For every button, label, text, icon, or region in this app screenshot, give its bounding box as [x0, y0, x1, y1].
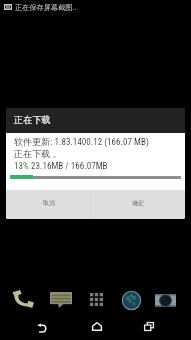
- button[interactable]: Phone: [8, 285, 38, 313]
- staticText: 正在下载: [14, 114, 51, 126]
- button[interactable]: Back: [32, 314, 52, 340]
- staticText: 取消: [43, 199, 55, 206]
- button[interactable]: Camera: [150, 286, 180, 314]
- staticText: 正在下载 。: [14, 148, 62, 159]
- button[interactable]: Home: [87, 313, 107, 340]
- staticText: 正在保存屏幕截图..: [15, 3, 77, 12]
- button[interactable]: Recents: [139, 313, 159, 340]
- button[interactable]: Browser: [116, 286, 146, 314]
- staticText: 13%: [14, 161, 29, 172]
- button[interactable]: 取消: [6, 190, 91, 219]
- button[interactable]: Apps: [81, 285, 111, 313]
- staticText: 确定: [132, 199, 144, 206]
- staticText: 软件更新: 1.83.1400.12 (166.07 MB): [14, 136, 149, 147]
- staticText: 23.16MB / 166.07MB: [29, 161, 108, 172]
- button[interactable]: Messages: [46, 286, 76, 314]
- button[interactable]: 确定: [93, 190, 185, 219]
